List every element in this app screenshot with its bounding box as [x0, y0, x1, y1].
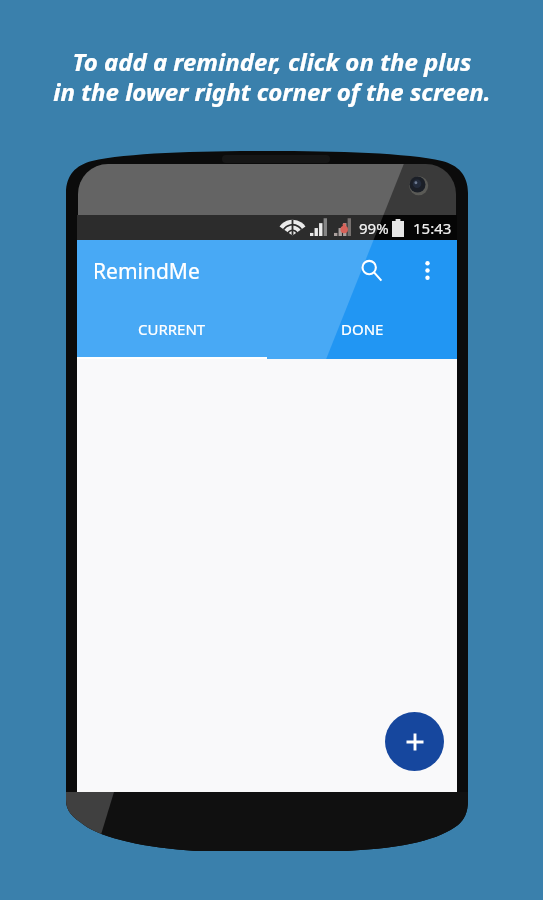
staticText: CURRENT [138, 319, 206, 339]
button[interactable]: More options [405, 248, 449, 292]
staticText: 99% [359, 218, 389, 238]
staticText: 15:43 [413, 218, 452, 238]
button[interactable]: Search [347, 246, 395, 294]
button[interactable]: DONE [267, 298, 457, 360]
button[interactable]: Add reminder [385, 712, 444, 771]
staticText: RemindMe [93, 257, 200, 286]
button[interactable]: CURRENT [77, 298, 267, 360]
staticText: DONE [341, 319, 384, 339]
staticText: To add a reminder, click on the plus in … [53, 45, 491, 108]
